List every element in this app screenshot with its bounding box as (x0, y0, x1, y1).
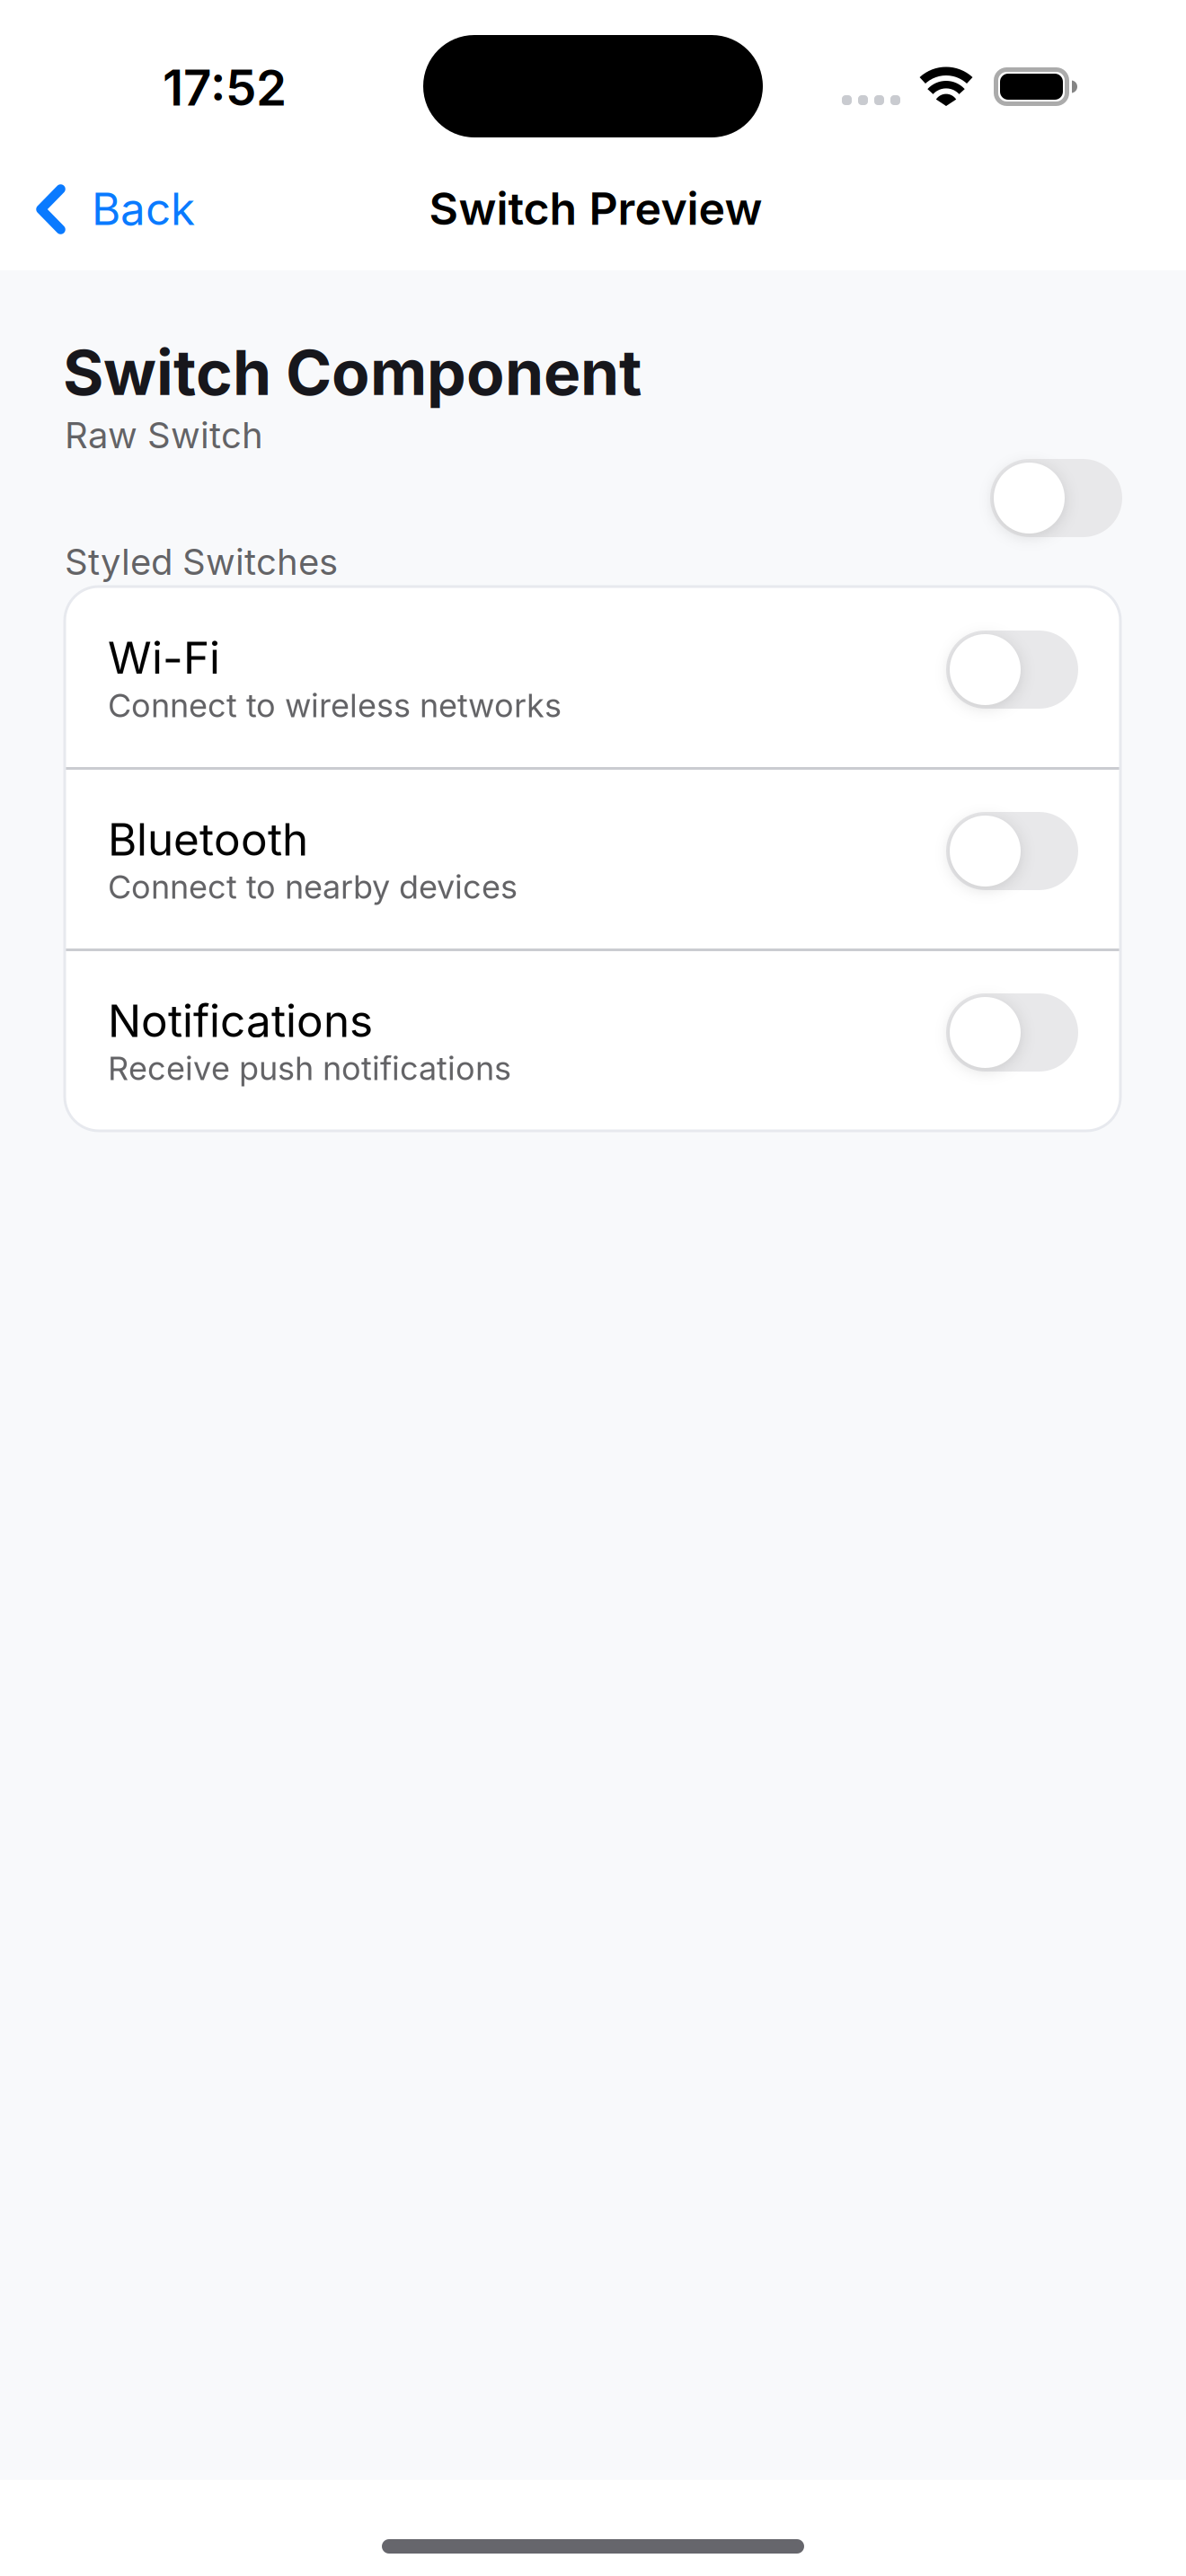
staticText: Back (92, 182, 195, 236)
button[interactable]: Bluetooth (65, 768, 1120, 949)
button[interactable]: Raw Switch (990, 459, 1122, 537)
button[interactable]: Wi-Fi (65, 587, 1120, 768)
staticText: Connect to nearby devices (108, 867, 518, 907)
button[interactable]: Bluetooth (946, 812, 1078, 890)
staticText: Switch Preview (429, 181, 762, 236)
staticText: Connect to wireless networks (108, 686, 562, 725)
staticText: Bluetooth (108, 813, 308, 866)
staticText: Styled Switches (65, 540, 338, 584)
staticText: Receive push notifications (108, 1049, 511, 1088)
staticText: Wi-Fi (108, 631, 220, 685)
staticText: Raw Switch (65, 413, 263, 457)
button[interactable]: Back (0, 151, 252, 270)
button[interactable]: Notifications (65, 949, 1120, 1131)
staticText: 17:52 (163, 58, 287, 117)
staticText: Notifications (108, 994, 373, 1048)
button[interactable]: Notifications (946, 993, 1078, 1072)
staticText: Switch Component (63, 335, 642, 410)
button[interactable]: Wi-Fi (946, 631, 1078, 709)
